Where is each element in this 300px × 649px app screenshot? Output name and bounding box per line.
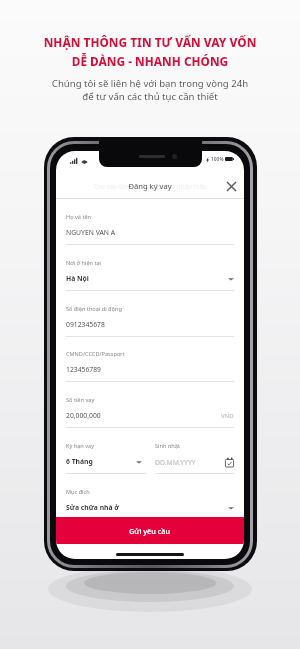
staticText: Kỳ hạn vay xyxy=(66,442,95,450)
button[interactable]: Số điện thoại di động xyxy=(56,291,244,337)
staticText: Nơi ở hiện tại xyxy=(66,259,102,267)
staticText: Sửa chữa nhà ở xyxy=(66,503,119,512)
button[interactable]: Sinh nhật xyxy=(155,428,234,474)
button[interactable]: CMND/CCCD/Passport xyxy=(56,336,244,382)
staticText: NGUYEN VAN A xyxy=(66,228,116,237)
staticText: Chúng tôi sẽ liên hệ với bạn trong vòng … xyxy=(0,77,300,103)
staticText: Số tiền vay xyxy=(66,396,95,404)
button[interactable]: Nơi ở hiện tại xyxy=(56,245,244,291)
staticText: 0912345678 xyxy=(66,320,105,329)
button[interactable]: Kỳ hạn vay xyxy=(56,428,146,474)
staticText: Cho vay dành cho người thu nhập thấp xyxy=(56,182,244,190)
staticText: 20,000,000 xyxy=(66,411,101,420)
button[interactable]: Họ và tên xyxy=(56,199,244,245)
button[interactable]: Số tiền vay xyxy=(56,382,244,428)
staticText: CMND/CCCD/Passport xyxy=(66,350,125,358)
staticText: Hà Nội xyxy=(66,274,89,283)
staticText: VND xyxy=(221,412,234,420)
staticText: Sinh nhật xyxy=(155,442,180,450)
staticText: 123456789 xyxy=(66,365,101,374)
button[interactable]: Close xyxy=(223,178,240,195)
staticText: DD.MM.YYYY xyxy=(155,458,196,467)
staticText: 100% xyxy=(211,156,224,163)
staticText: Mục đích xyxy=(66,488,90,496)
button[interactable]: Mục đích xyxy=(56,474,244,520)
button[interactable]: Gửi yêu cầu xyxy=(56,517,244,544)
staticText: Đăng ký vay xyxy=(128,181,172,191)
staticText: Gửi yêu cầu xyxy=(129,526,171,536)
staticText: NHẬN THÔNG TIN TƯ VẤN VAY VỐN DỄ DÀNG - … xyxy=(0,34,300,69)
staticText: Họ và tên xyxy=(66,213,92,221)
staticText: 6 Tháng xyxy=(66,457,93,466)
staticText: Số điện thoại di động xyxy=(66,305,122,313)
